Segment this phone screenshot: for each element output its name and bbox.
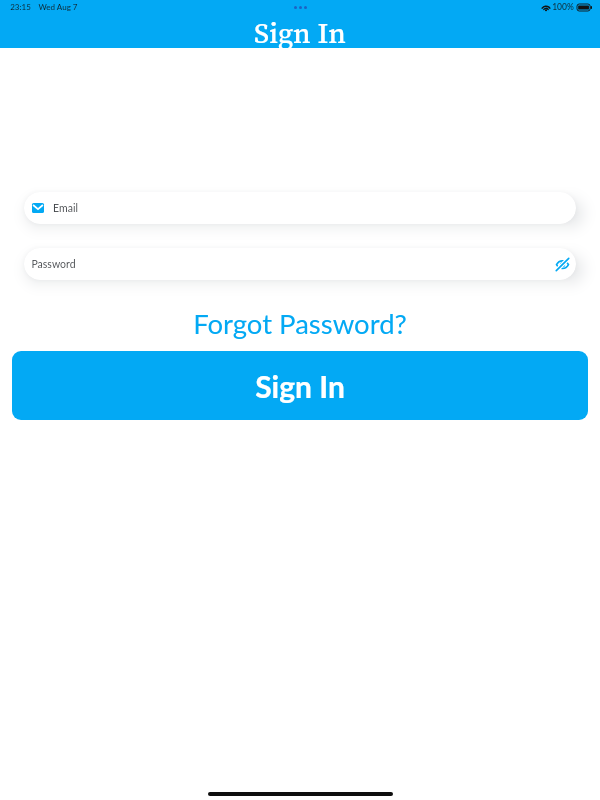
staticText: 23:15 — [10, 2, 31, 12]
staticText: Email — [53, 202, 78, 215]
staticText: Sign In — [254, 13, 346, 48]
staticText: 100% — [552, 2, 574, 12]
button[interactable]: Password — [24, 248, 576, 280]
button[interactable]: Sign In — [12, 351, 588, 420]
staticText: Wed Aug 7 — [38, 2, 78, 12]
staticText: Forgot Password? — [193, 307, 407, 339]
button[interactable]: Forgot Password? — [0, 307, 600, 339]
button[interactable]: Show password — [552, 254, 572, 274]
button[interactable]: Email — [24, 192, 576, 224]
staticText: Sign In — [255, 368, 345, 404]
staticText: Password — [31, 258, 76, 271]
